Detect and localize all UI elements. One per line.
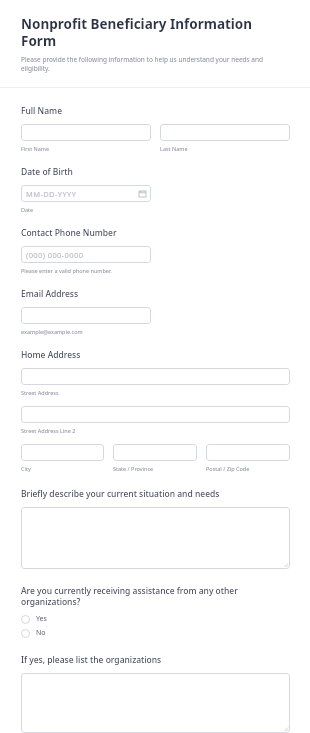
button[interactable] [206,444,290,461]
staticText: Briefly describe your current situation … [21,488,220,500]
staticText: Yes [36,614,47,624]
button[interactable] [21,307,151,324]
staticText: Please provide the following information… [21,55,289,73]
staticText: Contact Phone Number [21,227,117,239]
button[interactable] [160,124,290,141]
staticText: City [21,465,31,472]
staticText: Email Address [21,288,79,300]
staticText: First Name [21,145,50,152]
button[interactable]: MM-DD-YYYY [21,185,151,202]
staticText: Street Address Line 2 [21,427,76,434]
button[interactable]: (000) 000-0000 [21,246,151,263]
staticText: MM-DD-YYYY [26,189,77,199]
staticText: Are you currently receiving assistance f… [21,585,290,607]
staticText: Postal / Zip Code [206,465,250,472]
staticText: Date of Birth [21,166,73,178]
staticText: Last Name [160,145,188,152]
button[interactable] [21,124,151,141]
button[interactable] [21,673,290,733]
staticText: State / Province [113,465,154,472]
staticText: Please enter a valid phone number. [21,267,112,274]
staticText: Full Name [21,105,63,117]
button[interactable]: No [21,626,290,640]
staticText: Street Address [21,389,59,396]
button[interactable] [21,444,104,461]
staticText: No [36,628,46,638]
button[interactable]: Yes [21,612,290,626]
staticText: Nonprofit Beneficiary Information Form [21,15,289,50]
button[interactable] [21,368,290,385]
button[interactable] [21,406,290,423]
button[interactable] [21,507,290,569]
staticText: (000) 000-0000 [26,250,84,260]
staticText: Date [21,206,34,213]
staticText: If yes, please list the organizations [21,654,162,666]
staticText: example@example.com [21,328,83,335]
button[interactable] [113,444,197,461]
staticText: Home Address [21,349,81,361]
